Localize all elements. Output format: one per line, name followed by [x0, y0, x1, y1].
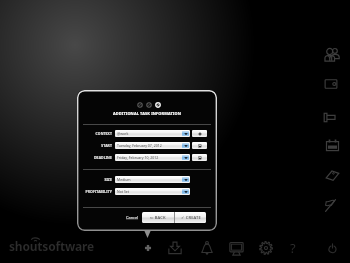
button[interactable]: Flags: [319, 192, 345, 218]
staticText: @work: [117, 131, 181, 136]
button[interactable]: Pick start date: [192, 142, 207, 149]
button[interactable]: Connections: [318, 104, 344, 130]
button[interactable]: Step 1: [136, 101, 144, 109]
button[interactable]: Wallet: [319, 71, 345, 97]
button[interactable]: Pick deadline date: [192, 154, 207, 161]
staticText: Medium: [117, 177, 181, 182]
button[interactable]: Add context: [192, 130, 207, 137]
button[interactable]: Contacts: [319, 41, 345, 67]
button[interactable]: Not Set: [115, 188, 190, 195]
button[interactable]: Cancel: [125, 213, 140, 222]
button[interactable]: Step 3: [154, 101, 162, 109]
button[interactable]: Tags: [319, 162, 345, 188]
staticText: Cancel: [126, 215, 139, 220]
staticText: START: [77, 143, 112, 148]
staticText: Friday, February 10, 2012: [117, 155, 181, 160]
button[interactable]: Display: [225, 237, 247, 259]
button[interactable]: Friday, February 10, 2012: [115, 154, 190, 161]
button[interactable]: Inbox: [165, 237, 187, 259]
staticText: Not Set: [117, 189, 181, 194]
button[interactable]: Power off: [319, 235, 345, 261]
staticText: SIZE: [77, 177, 112, 182]
button[interactable]: ✓ CREATE: [175, 212, 206, 223]
staticText: PROFITABILITY: [77, 189, 112, 194]
button[interactable]: Step 2: [145, 101, 153, 109]
staticText: shoutsoftware: [9, 238, 94, 254]
staticText: ?: [290, 239, 296, 257]
staticText: ✓ CREATE: [181, 215, 201, 221]
staticText: DEADLINE: [77, 155, 112, 160]
staticText: ⇐ BACK: [150, 215, 166, 221]
staticText: CONTEXT: [77, 131, 112, 136]
button[interactable]: New task: [137, 237, 159, 259]
button[interactable]: @work: [115, 130, 190, 137]
staticText: ADDITIONAL TASK INFORMATION: [77, 111, 217, 116]
staticText: Tuesday, February 07, 2012: [117, 143, 181, 148]
button[interactable]: Help: [282, 237, 304, 259]
button[interactable]: Reminders: [196, 237, 218, 259]
button[interactable]: Calendar: [319, 133, 345, 159]
button[interactable]: Tuesday, February 07, 2012: [115, 142, 190, 149]
button[interactable]: Settings: [255, 237, 277, 259]
button[interactable]: ⇐ BACK: [142, 212, 174, 223]
button[interactable]: Medium: [115, 176, 190, 183]
